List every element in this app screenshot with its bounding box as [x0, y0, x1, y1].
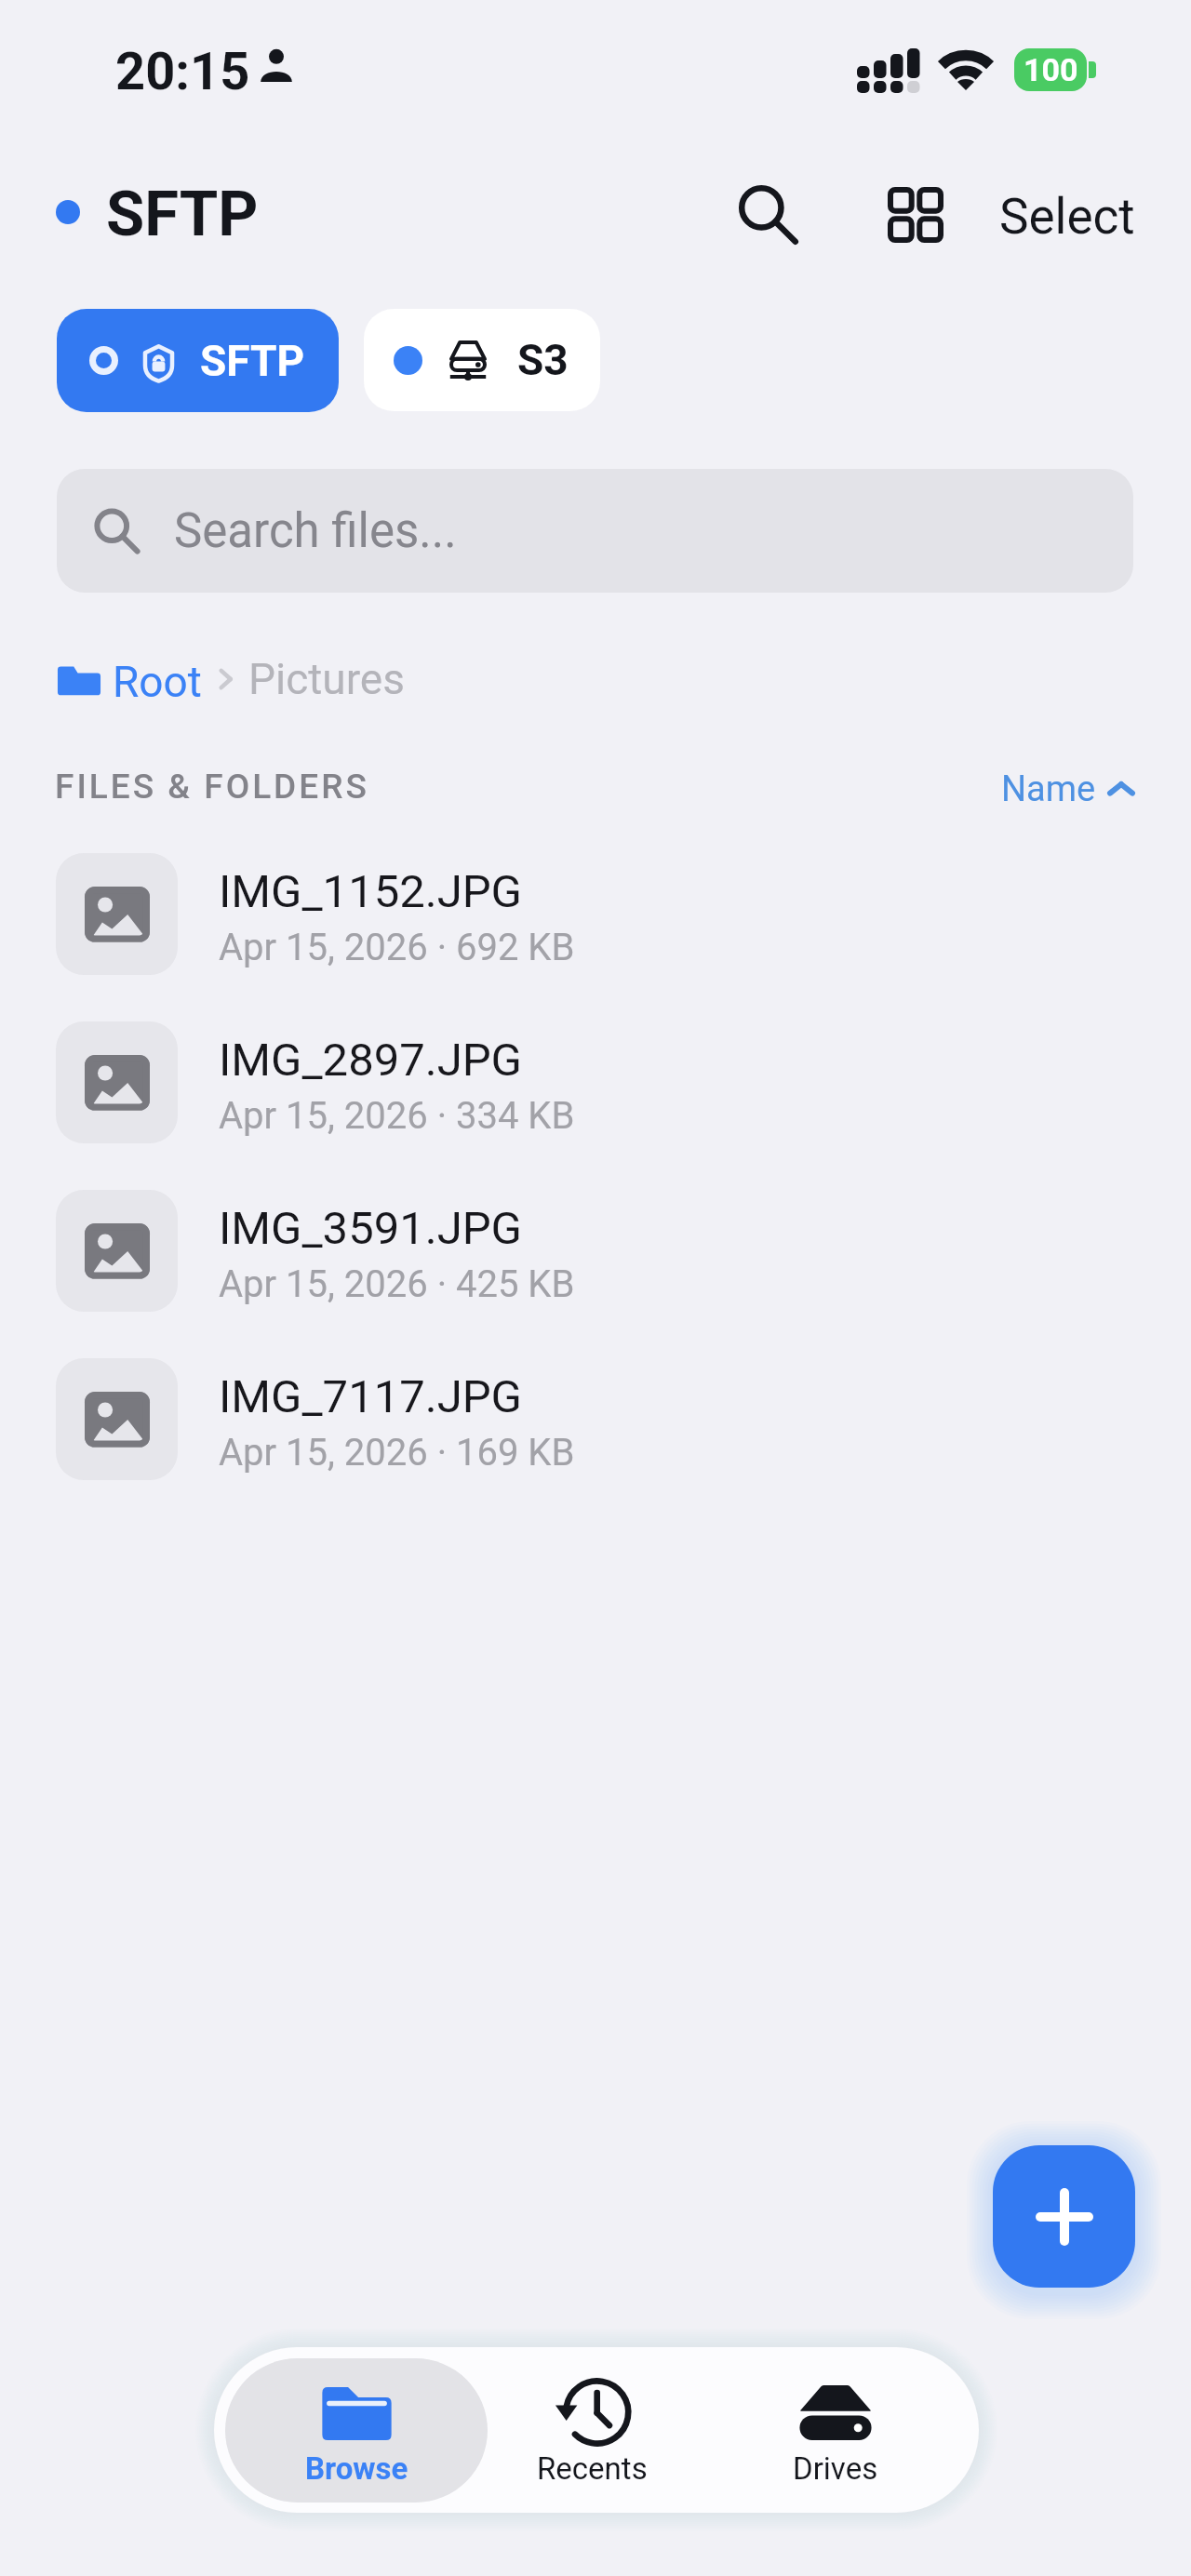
- button[interactable]: Drives: [717, 2358, 953, 2503]
- staticText: Drives: [793, 2450, 878, 2487]
- staticText: Root: [113, 657, 202, 701]
- staticText: Search files...: [174, 503, 457, 559]
- staticText: SFTP: [106, 178, 259, 251]
- staticText: IMG_2897.JPG: [219, 1034, 522, 1087]
- staticText: IMG_3591.JPG: [219, 1202, 522, 1255]
- staticText: S3: [517, 335, 569, 385]
- button[interactable]: Search: [726, 172, 811, 258]
- staticText: Select: [999, 188, 1135, 246]
- staticText: Recents: [537, 2450, 648, 2487]
- button[interactable]: Add: [993, 2145, 1135, 2288]
- staticText: FILES & FOLDERS: [55, 767, 369, 807]
- button[interactable]: SFTP: [57, 309, 339, 412]
- button[interactable]: IMG_3591.JPG: [0, 1190, 1191, 1312]
- staticText: Pictures: [248, 654, 405, 704]
- button[interactable]: Recents: [469, 2358, 716, 2503]
- staticText: Apr 15, 2026 · 169 KB: [219, 1431, 575, 1475]
- button[interactable]: Search files...: [57, 469, 1133, 593]
- staticText: IMG_7117.JPG: [219, 1370, 522, 1423]
- staticText: Apr 15, 2026 · 692 KB: [219, 926, 575, 969]
- staticText: 100: [1024, 51, 1078, 88]
- button[interactable]: Root: [57, 651, 202, 707]
- staticText: Apr 15, 2026 · 425 KB: [219, 1262, 575, 1306]
- staticText: 20:15: [115, 41, 250, 102]
- button[interactable]: IMG_7117.JPG: [0, 1358, 1191, 1480]
- staticText: IMG_1152.JPG: [219, 865, 522, 918]
- button[interactable]: Grid view: [872, 171, 957, 257]
- button[interactable]: S3: [364, 309, 600, 411]
- staticText: Browse: [305, 2450, 408, 2487]
- button[interactable]: IMG_1152.JPG: [0, 853, 1191, 975]
- button[interactable]: Name: [988, 761, 1148, 818]
- button[interactable]: IMG_2897.JPG: [0, 1021, 1191, 1143]
- staticText: Apr 15, 2026 · 334 KB: [219, 1094, 575, 1138]
- button[interactable]: Select: [984, 182, 1150, 251]
- staticText: SFTP: [200, 336, 305, 386]
- staticText: Name: [1001, 768, 1096, 810]
- button[interactable]: Browse: [225, 2358, 488, 2503]
